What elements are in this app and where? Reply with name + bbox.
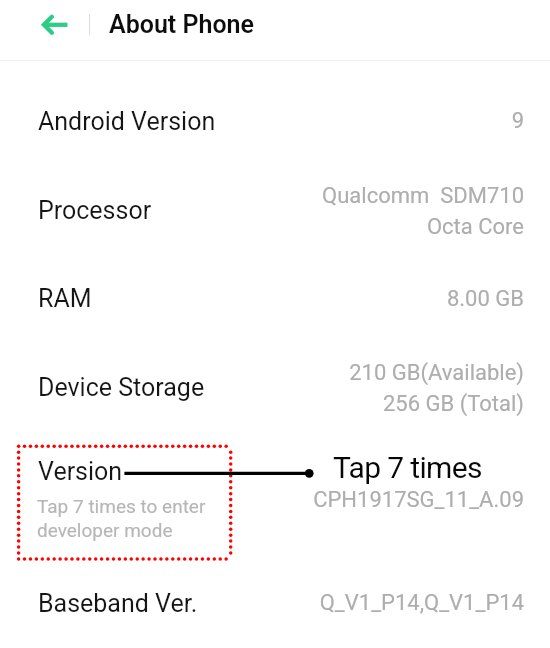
staticText: Tap 7 times to enter developer mode xyxy=(37,495,206,542)
button[interactable]: Version xyxy=(0,420,550,550)
button[interactable]: Back xyxy=(26,2,70,46)
staticText: Version xyxy=(38,457,123,486)
staticText: Qualcomm SDM710 Octa Core xyxy=(322,183,524,239)
staticText: 210 GB(Available) 256 GB (Total) xyxy=(349,360,524,416)
staticText: Q_V1_P14,Q_V1_P14 xyxy=(319,590,524,616)
button[interactable]: RAM xyxy=(0,244,550,332)
staticText: 9 xyxy=(511,108,524,134)
button[interactable]: Baseband Ver. xyxy=(0,550,550,638)
staticText: Processor xyxy=(38,196,152,225)
staticText: Baseband Ver. xyxy=(38,589,198,618)
staticText: CPH1917SG_11_A.09 xyxy=(313,487,524,513)
staticText: Tap 7 times xyxy=(333,450,482,485)
staticText: RAM xyxy=(38,284,92,313)
staticText: About Phone xyxy=(109,10,255,39)
button[interactable]: Processor xyxy=(0,156,550,244)
staticText: Device Storage xyxy=(38,373,205,402)
staticText: 8.00 GB xyxy=(446,286,524,312)
button[interactable]: Device Storage xyxy=(0,332,550,420)
button[interactable]: Android Version xyxy=(0,68,550,156)
staticText: Android Version xyxy=(38,107,216,136)
